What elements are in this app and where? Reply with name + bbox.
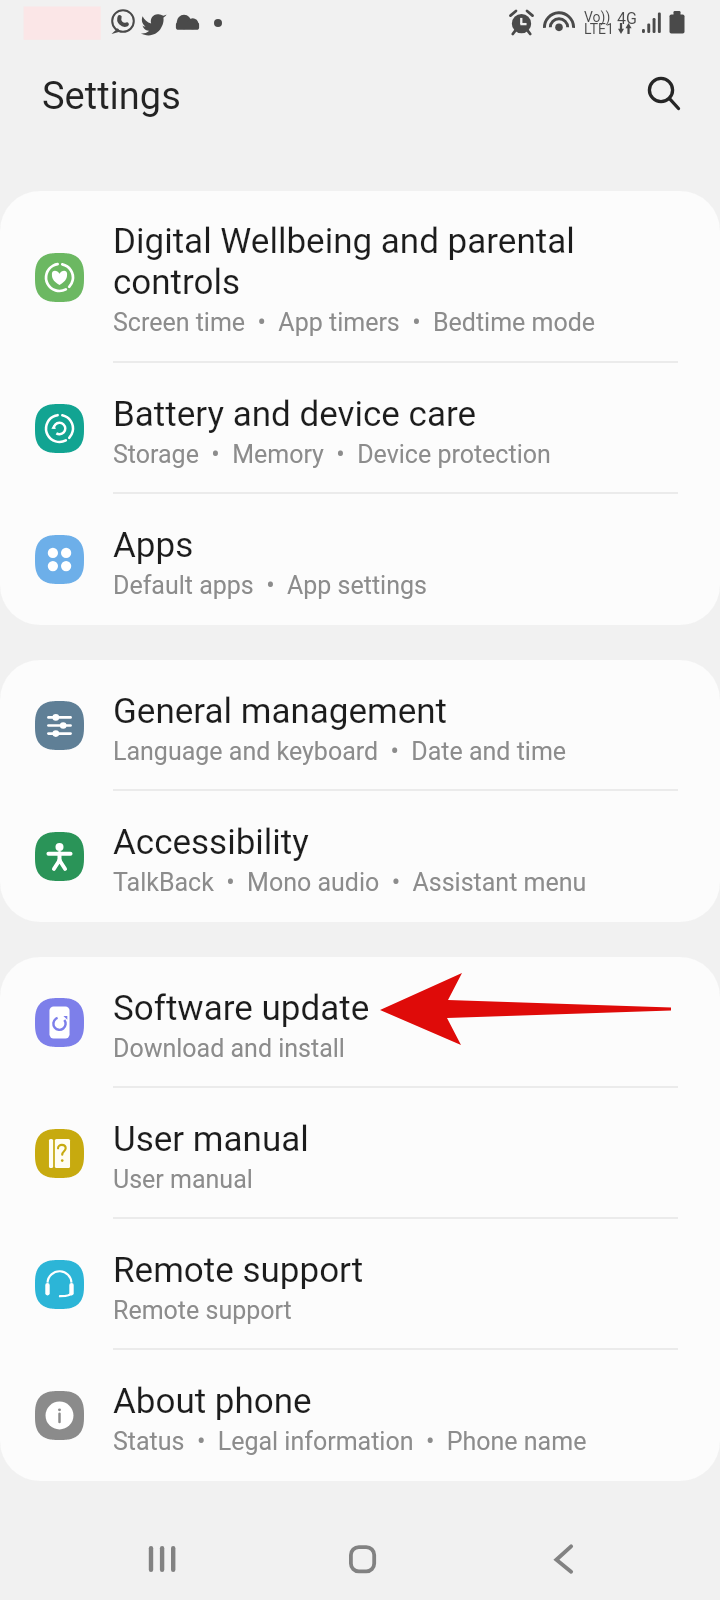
button[interactable]: Remote support <box>0 1219 720 1350</box>
button[interactable]: Software update <box>0 957 720 1088</box>
staticText: User manual <box>113 1119 309 1160</box>
staticText: 4G <box>617 9 637 28</box>
staticText: Status • Legal information • Phone name <box>113 1427 587 1456</box>
staticText: Digital Wellbeing and parental controls <box>113 221 575 303</box>
staticText: Default apps • App settings <box>113 571 427 600</box>
staticText: Language and keyboard • Date and time <box>113 737 567 766</box>
button[interactable]: User manual <box>0 1088 720 1219</box>
staticText: Software update <box>113 988 370 1029</box>
staticText: TalkBack • Mono audio • Assistant menu <box>113 868 587 897</box>
staticText: About phone <box>113 1381 312 1422</box>
button[interactable]: Battery and device care <box>0 363 720 494</box>
staticText: Storage • Memory • Device protection <box>113 440 551 469</box>
staticText: Screen time • App timers • Bedtime mode <box>113 308 596 337</box>
staticText: Download and install <box>113 1034 345 1063</box>
button[interactable]: General management <box>0 660 720 791</box>
button[interactable]: Digital Wellbeing and parental controls <box>0 191 720 363</box>
staticText: User manual <box>113 1165 253 1194</box>
button[interactable]: Recent apps <box>121 1519 201 1599</box>
button[interactable]: Accessibility <box>0 791 720 922</box>
staticText: General management <box>113 691 448 732</box>
staticText: Vo)) LTE1 <box>584 9 614 37</box>
button[interactable]: Home <box>322 1519 402 1599</box>
staticText: Remote support <box>113 1296 292 1325</box>
button[interactable]: Search <box>626 58 696 128</box>
staticText: Accessibility <box>113 822 309 863</box>
staticText: Battery and device care <box>113 394 477 435</box>
staticText: Remote support <box>113 1250 364 1291</box>
button[interactable]: About phone <box>0 1350 720 1481</box>
staticText: Apps <box>113 525 194 566</box>
button[interactable]: Back <box>521 1519 601 1599</box>
staticText: Settings <box>42 74 181 118</box>
button[interactable]: Apps <box>0 494 720 625</box>
